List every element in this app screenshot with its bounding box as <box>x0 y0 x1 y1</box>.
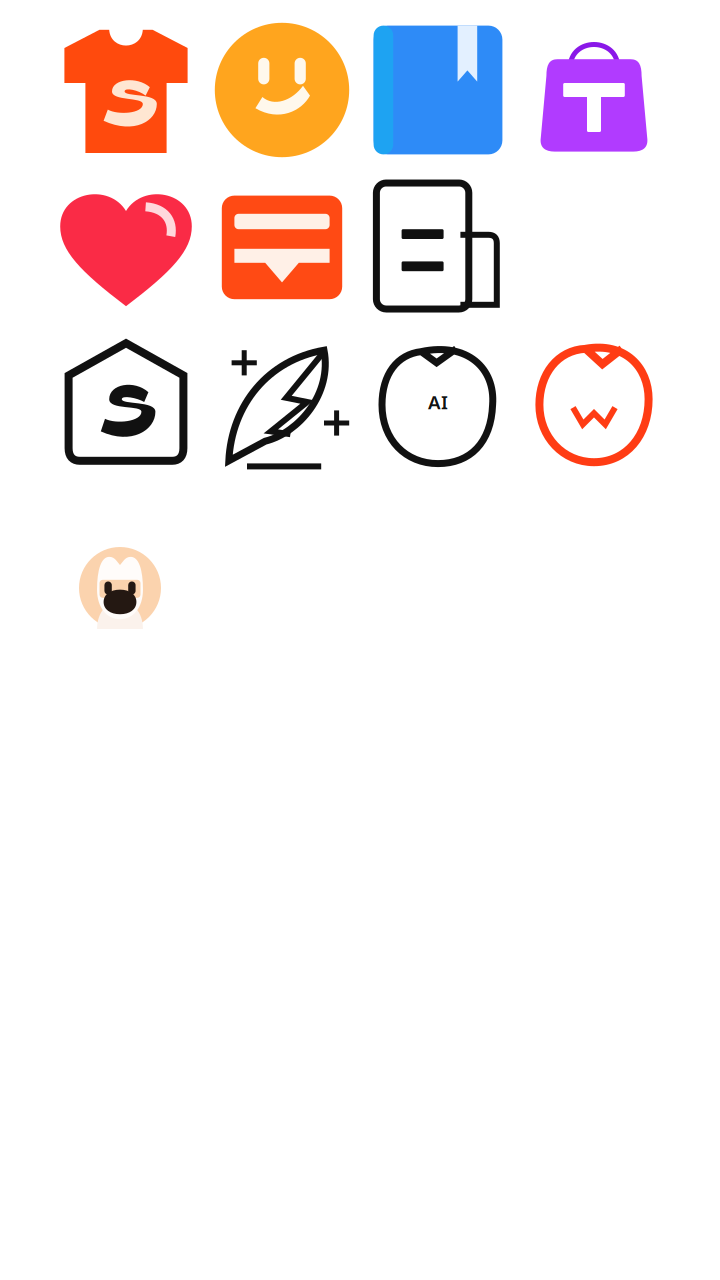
staticText: AI <box>428 390 448 414</box>
